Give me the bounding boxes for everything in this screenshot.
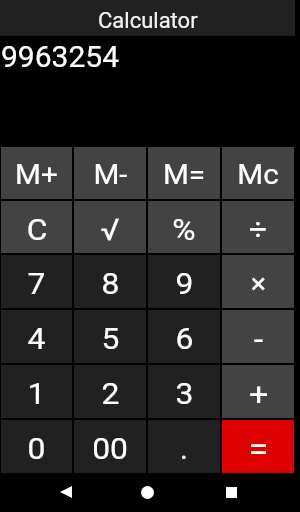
button[interactable]: ÷ [222, 201, 294, 253]
staticText: Calculator [98, 8, 198, 34]
staticText: = [248, 429, 268, 469]
button[interactable]: 7 [1, 255, 72, 308]
staticText: ÷ [248, 212, 268, 247]
button[interactable]: 9 [148, 255, 220, 308]
button[interactable]: . [148, 420, 220, 473]
button[interactable]: M= [148, 147, 220, 199]
button[interactable]: Mc [222, 147, 294, 199]
staticText: . [180, 431, 188, 466]
button[interactable]: 00 [74, 420, 146, 473]
staticText: × [251, 268, 266, 300]
staticText: 9963254 [1, 39, 120, 74]
staticText: % [172, 212, 196, 247]
staticText: 2 [101, 376, 119, 411]
button[interactable]: % [148, 201, 220, 253]
button[interactable]: Back [24, 474, 108, 510]
staticText: Mc [237, 158, 279, 191]
staticText: 4 [27, 321, 45, 356]
button[interactable]: Recent apps [189, 474, 273, 510]
button[interactable]: 1 [1, 365, 72, 418]
button[interactable]: C [1, 201, 72, 253]
staticText: 0 [27, 431, 45, 466]
button[interactable]: - [222, 310, 294, 363]
staticText: 5 [101, 321, 119, 356]
button[interactable]: 2 [74, 365, 146, 418]
button[interactable]: = [222, 420, 294, 473]
button[interactable]: 0 [1, 420, 72, 473]
staticText: √ [100, 212, 120, 247]
button[interactable]: M+ [1, 147, 72, 199]
button[interactable]: + [222, 365, 294, 418]
button[interactable]: √ [74, 201, 146, 253]
button[interactable]: 8 [74, 255, 146, 308]
staticText: 6 [175, 321, 193, 356]
staticText: M- [93, 158, 128, 191]
staticText: 1 [27, 376, 45, 411]
staticText: 00 [92, 431, 128, 466]
button[interactable]: 6 [148, 310, 220, 363]
staticText: - [254, 320, 263, 358]
button[interactable]: × [222, 255, 294, 308]
button[interactable]: M- [74, 147, 146, 199]
button[interactable]: 3 [148, 365, 220, 418]
staticText: + [248, 375, 268, 413]
button[interactable]: 5 [74, 310, 146, 363]
staticText: 8 [101, 266, 119, 301]
button[interactable]: 4 [1, 310, 72, 363]
staticText: M= [163, 158, 205, 191]
button[interactable]: Home [105, 474, 189, 510]
staticText: M+ [15, 158, 58, 191]
staticText: 7 [27, 266, 45, 301]
staticText: C [26, 212, 48, 247]
staticText: 9 [175, 266, 193, 301]
staticText: 3 [175, 376, 193, 411]
